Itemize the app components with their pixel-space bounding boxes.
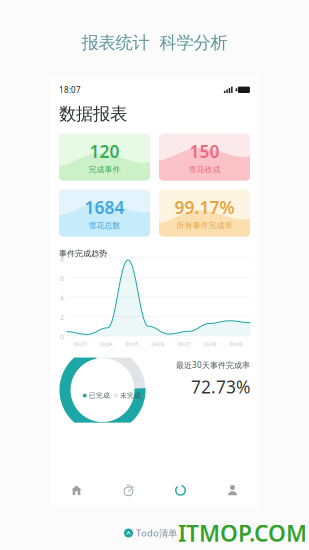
staticText: 09.04 <box>99 340 112 348</box>
staticText: 09.03 <box>73 340 86 348</box>
staticText: 所有事件完成率 <box>176 221 232 230</box>
staticText: 已完成 <box>89 391 110 400</box>
staticText: 72.73% <box>191 375 250 398</box>
staticText: 18:07 <box>59 84 81 95</box>
staticText: Todo清单 <box>136 527 177 539</box>
staticText: 雪花总数 <box>88 221 120 230</box>
staticText: 事件完成趋势 <box>59 249 107 258</box>
staticText: 数据报表 <box>59 103 127 125</box>
staticText: 99.17% <box>174 196 234 219</box>
button[interactable]: Timer <box>102 476 154 505</box>
staticText: 0 <box>60 333 64 341</box>
staticText: 09.09 <box>229 340 242 348</box>
staticText: 4 <box>60 294 64 302</box>
staticText: 09.05 <box>125 340 138 348</box>
staticText: 120 <box>89 140 119 163</box>
button[interactable]: 99.17% <box>159 190 250 237</box>
staticText: 09.08 <box>203 340 216 348</box>
staticText: 2 <box>60 313 64 322</box>
staticText: 未完成 <box>120 391 141 400</box>
button[interactable]: Profile <box>206 476 258 505</box>
button[interactable]: 1684 <box>59 190 150 237</box>
button[interactable]: 150 <box>159 134 250 181</box>
button[interactable]: 120 <box>59 134 150 181</box>
button[interactable]: Home <box>50 476 102 505</box>
staticText: 雪花收成 <box>188 165 220 174</box>
staticText: 最近30天事件完成率 <box>176 360 250 370</box>
staticText: 09.07 <box>177 340 190 348</box>
button[interactable]: Reports <box>154 476 206 505</box>
staticText: ITMOP.COM <box>178 518 307 548</box>
staticText: 6 <box>60 274 64 283</box>
staticText: 09.06 <box>151 340 164 348</box>
staticText: 1684 <box>84 196 124 219</box>
staticText: 完成事件 <box>88 165 120 174</box>
staticText: 8 <box>60 255 64 263</box>
staticText: 150 <box>189 140 219 163</box>
staticText: 报表统计 科学分析 <box>81 32 227 53</box>
